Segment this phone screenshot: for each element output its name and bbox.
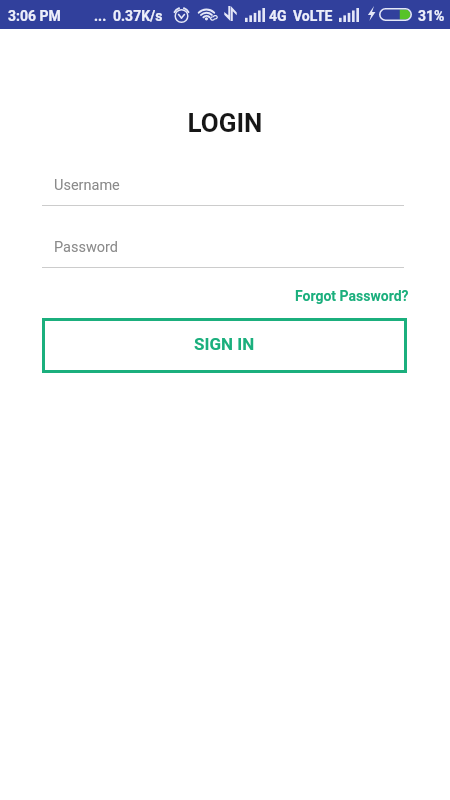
staticText: Password [54,239,119,256]
staticText: SIGN IN [194,334,255,354]
staticText: LOGIN [0,108,450,138]
staticText: ... [94,8,107,24]
staticText: VoLTE [293,8,333,24]
staticText: 3:06 PM [8,8,61,24]
staticText: 0.37K/s [113,8,163,24]
button[interactable]: Password [42,234,404,270]
button[interactable]: Username [42,172,404,208]
staticText: Forgot Password? [295,288,409,304]
staticText: 31% [418,8,445,24]
button[interactable]: SIGN IN [42,318,407,373]
staticText: 4G [269,8,287,24]
button[interactable]: Forgot Password? [295,288,409,304]
staticText: Username [54,177,120,194]
